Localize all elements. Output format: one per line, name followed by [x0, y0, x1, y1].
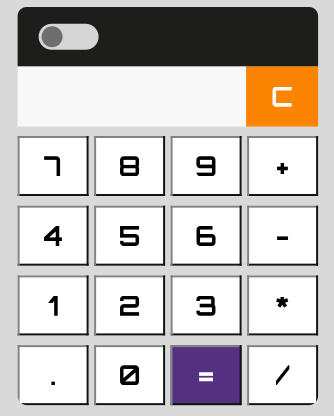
staticText: =: [198, 358, 215, 392]
button[interactable]: 6: [171, 206, 242, 266]
staticText: C: [271, 80, 293, 113]
button[interactable]: *: [247, 275, 318, 335]
staticText: 4: [44, 219, 63, 252]
button[interactable]: 3: [171, 275, 242, 335]
staticText: 8: [119, 149, 141, 183]
staticText: 5: [119, 219, 141, 252]
staticText: .: [50, 358, 56, 392]
button[interactable]: -: [247, 206, 318, 266]
button[interactable]: 4: [18, 206, 89, 266]
staticText: 1: [48, 289, 58, 322]
staticText: /: [276, 358, 290, 392]
button[interactable]: /: [247, 345, 318, 405]
button[interactable]: 8: [94, 136, 165, 196]
staticText: 6: [195, 219, 217, 252]
button[interactable]: =: [171, 345, 242, 405]
button[interactable]: C: [246, 66, 318, 126]
staticText: -: [276, 219, 290, 252]
staticText: 9: [195, 149, 217, 183]
button[interactable]: 1: [18, 275, 89, 335]
button[interactable]: 2: [94, 275, 165, 335]
button[interactable]: 9: [171, 136, 242, 196]
staticText: +: [277, 149, 289, 183]
staticText: 3: [195, 289, 217, 322]
staticText: 7: [44, 149, 62, 183]
button[interactable]: +: [247, 136, 318, 196]
staticText: *: [276, 289, 290, 322]
button[interactable]: 7: [18, 136, 89, 196]
staticText: 0: [119, 358, 141, 392]
button[interactable]: .: [18, 345, 89, 405]
button[interactable]: Power toggle: [39, 24, 99, 50]
button[interactable]: 0: [94, 345, 165, 405]
staticText: 2: [119, 289, 141, 322]
button[interactable]: 5: [94, 206, 165, 266]
